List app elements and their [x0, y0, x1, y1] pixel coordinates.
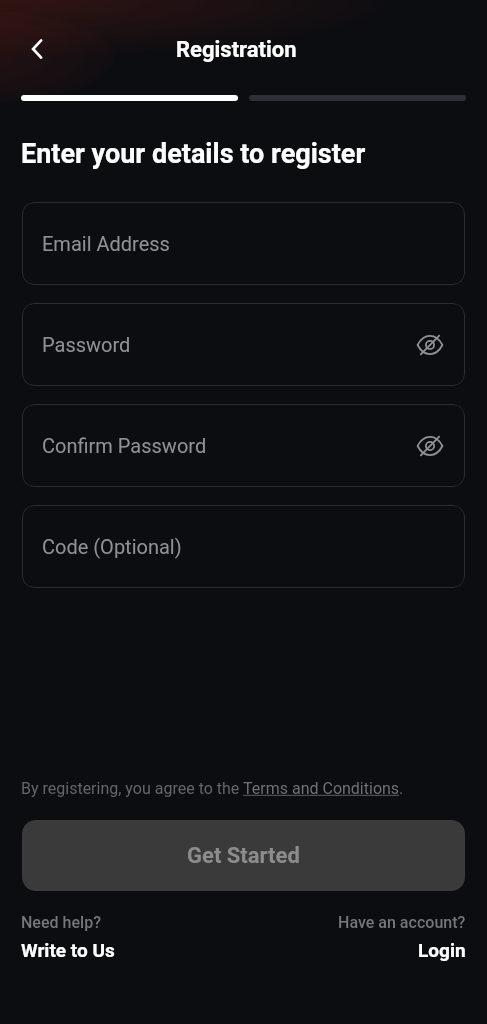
button[interactable]: Email Address	[22, 202, 465, 285]
staticText: Have an account?	[338, 913, 466, 932]
button[interactable]: Confirm Password	[22, 404, 465, 487]
button[interactable]: Password	[22, 303, 465, 386]
staticText: Enter your details to register	[21, 138, 366, 170]
staticText: Need help?	[21, 913, 101, 932]
button[interactable]: Back	[13, 25, 61, 73]
staticText: By registering, you agree to the Terms a…	[21, 779, 404, 798]
button[interactable]: Get Started	[22, 820, 465, 891]
button[interactable]: Code (Optional)	[22, 505, 465, 588]
staticText: Login	[418, 939, 466, 961]
staticText: Registration	[176, 37, 297, 63]
staticText: Confirm Password	[42, 434, 207, 457]
button[interactable]: Toggle password visibility	[414, 430, 446, 462]
staticText: Password	[42, 333, 131, 356]
staticText: Get Started	[187, 843, 300, 869]
button[interactable]: Have an account?	[338, 913, 466, 961]
button[interactable]: Need help?	[21, 913, 115, 961]
button[interactable]: Toggle password visibility	[414, 329, 446, 361]
staticText: Code (Optional)	[42, 535, 182, 558]
staticText: Email Address	[42, 232, 170, 255]
staticText: Write to Us	[21, 939, 115, 961]
